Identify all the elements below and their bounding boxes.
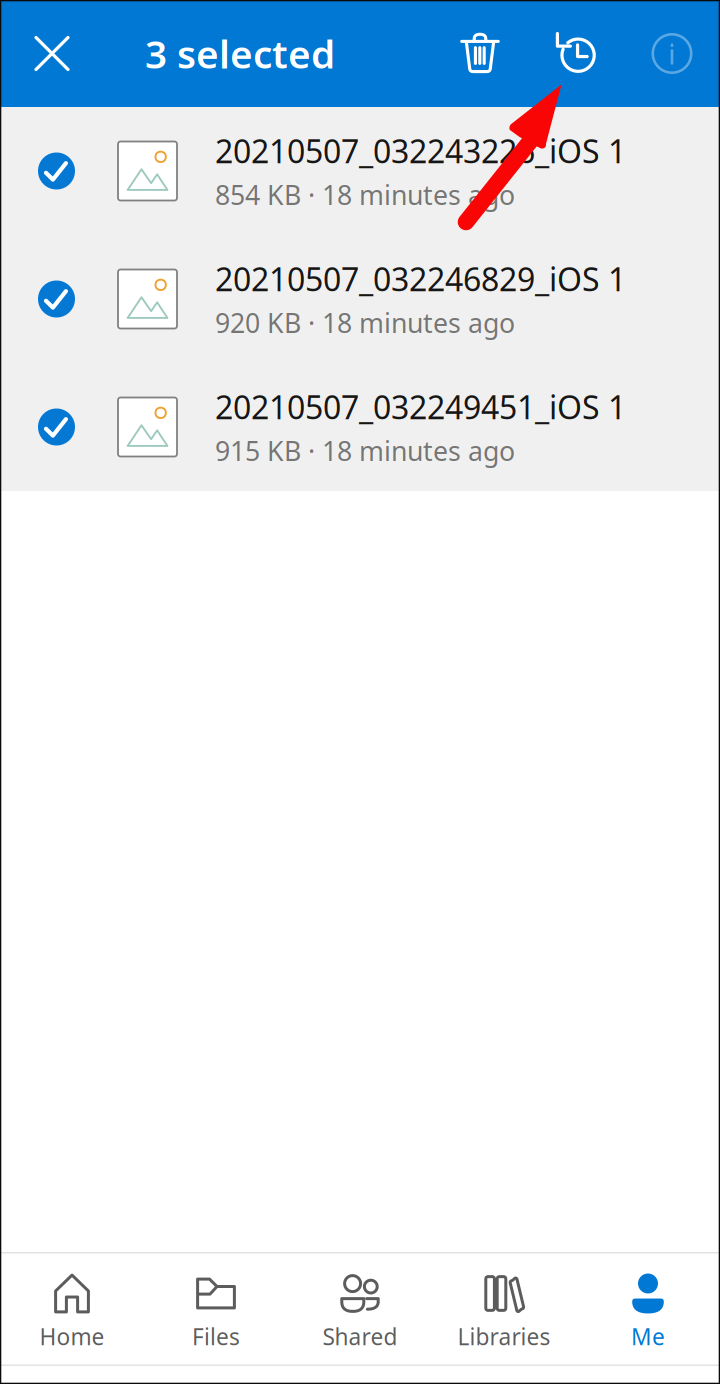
- button[interactable]: 20210507_032249451_iOS 1: [0, 363, 720, 491]
- button[interactable]: Shared: [288, 1253, 432, 1364]
- staticText: 20210507_032243226_iOS 1: [215, 129, 626, 172]
- button[interactable]: Close: [0, 0, 104, 107]
- staticText: Me: [631, 1321, 665, 1352]
- staticText: 854 KB · 18 minutes ago: [215, 177, 515, 212]
- button[interactable]: History: [528, 0, 624, 107]
- staticText: 920 KB · 18 minutes ago: [215, 305, 515, 340]
- button[interactable]: Details: [624, 0, 720, 107]
- button[interactable]: Files: [144, 1253, 288, 1364]
- staticText: Shared: [322, 1321, 397, 1352]
- button[interactable]: Libraries: [432, 1253, 576, 1364]
- staticText: Files: [192, 1321, 240, 1352]
- button[interactable]: Me: [576, 1253, 720, 1364]
- button[interactable]: 20210507_032243226_iOS 1: [0, 107, 720, 235]
- button[interactable]: Delete: [432, 0, 528, 107]
- staticText: 20210507_032246829_iOS 1: [215, 257, 626, 300]
- button[interactable]: Home: [0, 1253, 144, 1364]
- button[interactable]: 20210507_032246829_iOS 1: [0, 235, 720, 363]
- staticText: Libraries: [457, 1321, 550, 1352]
- staticText: Home: [39, 1321, 104, 1352]
- staticText: 20210507_032249451_iOS 1: [215, 385, 626, 428]
- staticText: 915 KB · 18 minutes ago: [215, 433, 515, 468]
- staticText: 3 selected: [145, 28, 335, 79]
